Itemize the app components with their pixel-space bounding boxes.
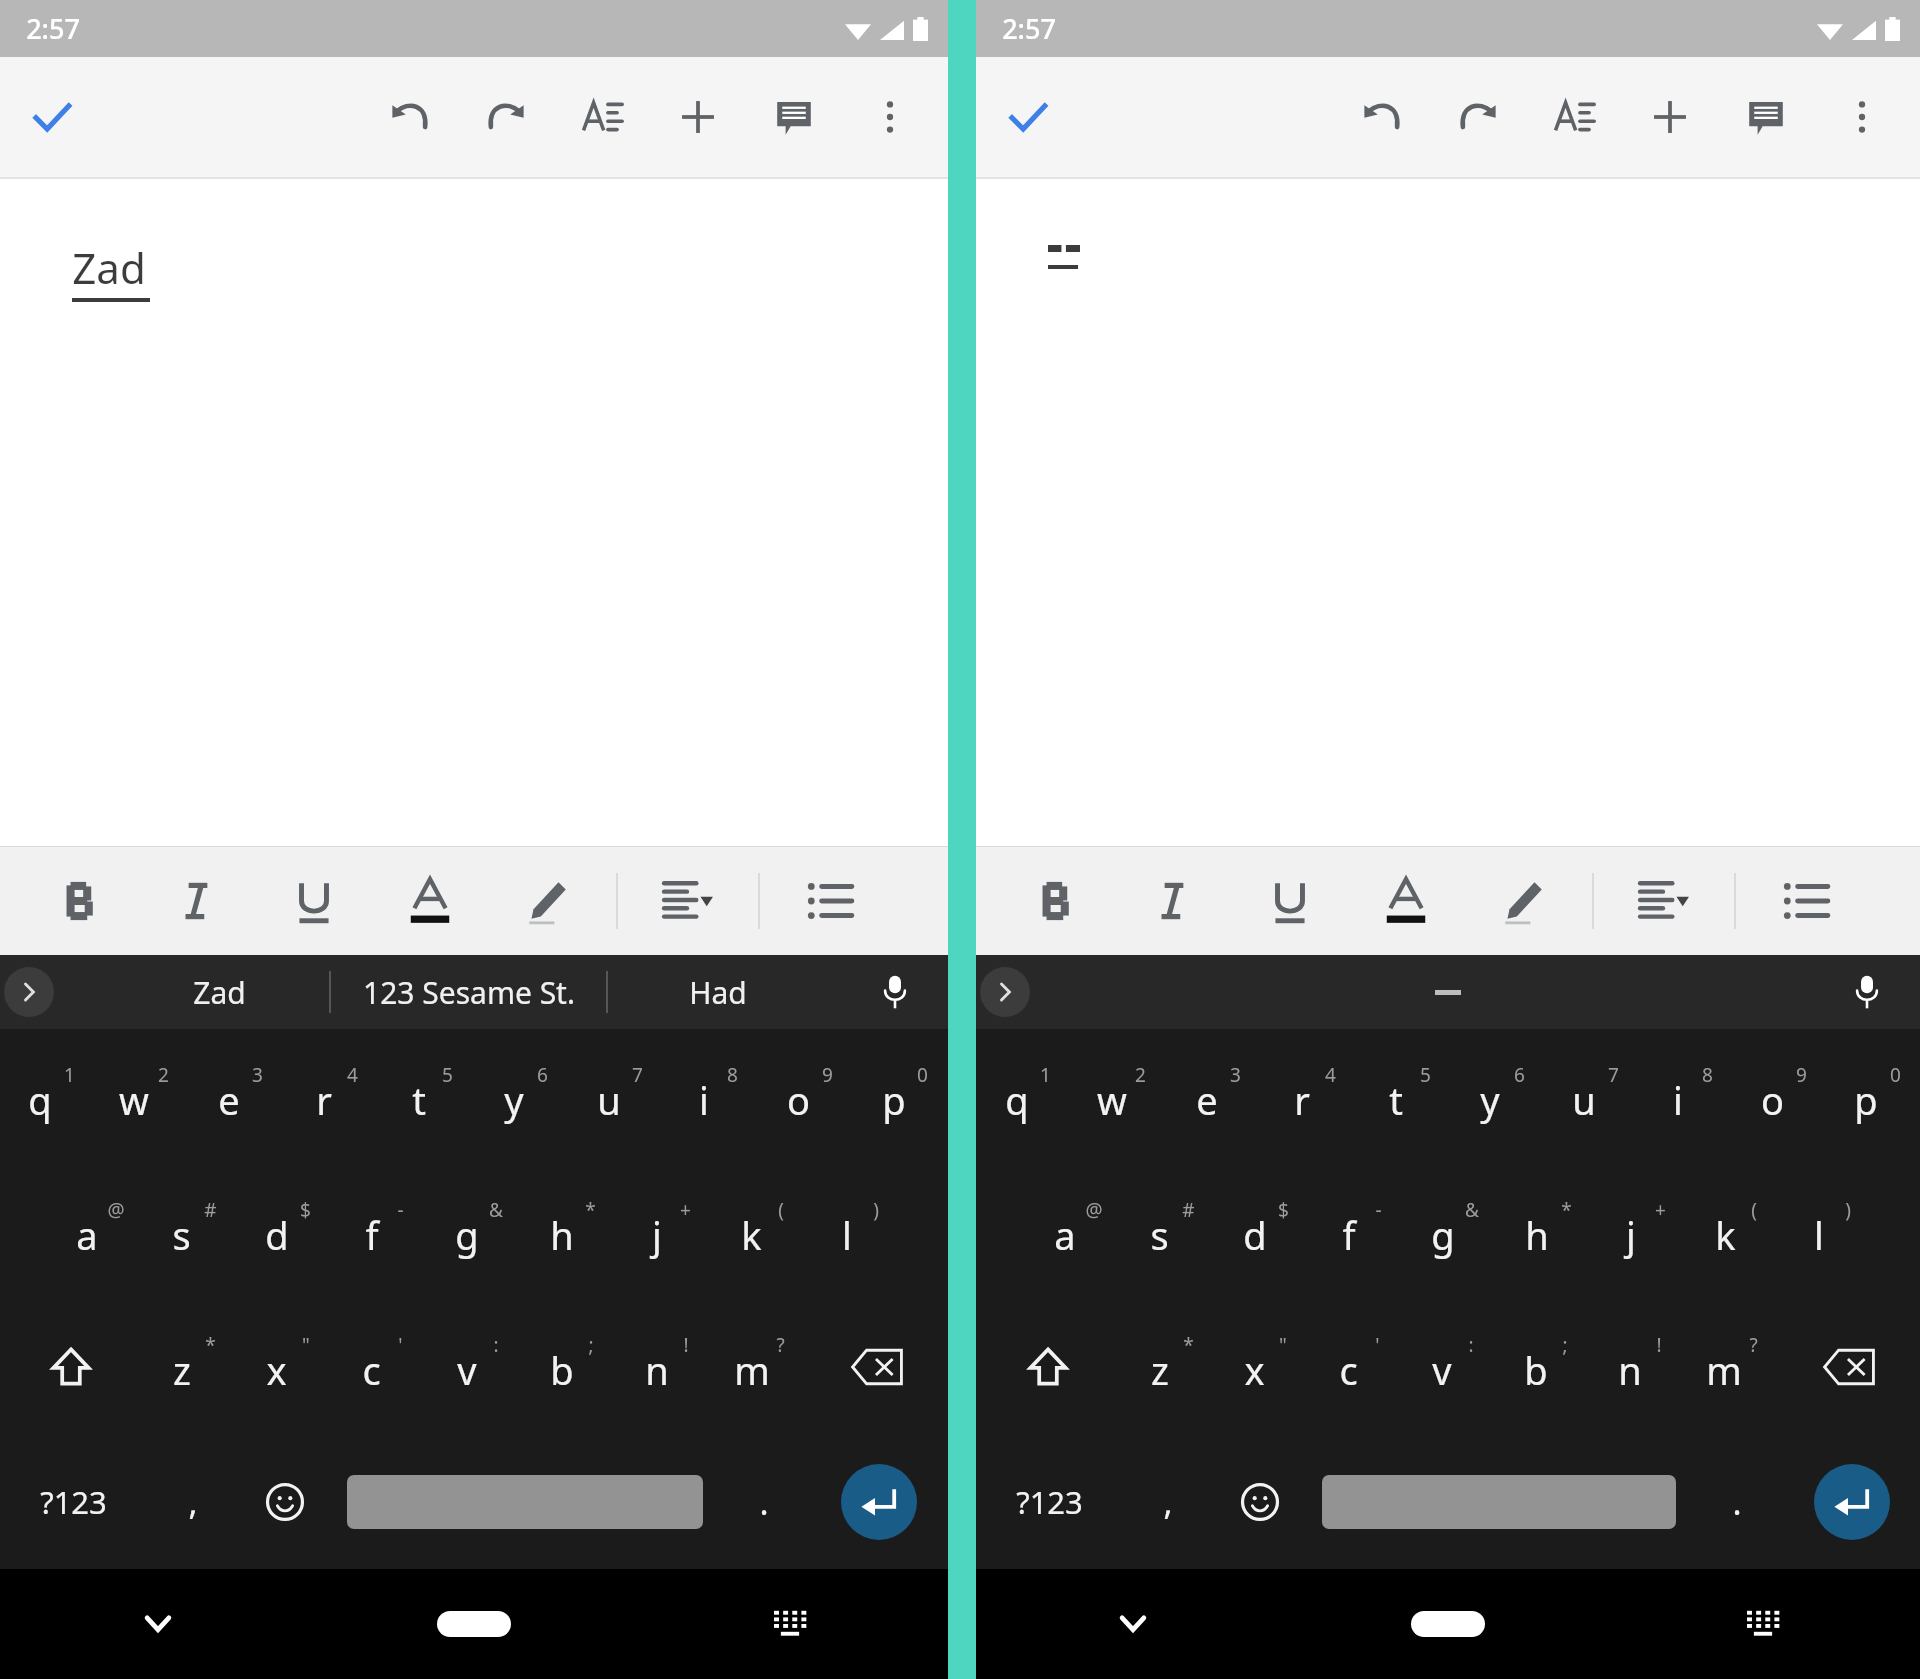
button[interactable]: k (1685, 1164, 1779, 1299)
button[interactable]: Zad (110, 955, 329, 1029)
button[interactable]: Underline (1254, 851, 1326, 951)
button[interactable]: Backspace (1778, 1299, 1920, 1434)
button[interactable]: Italic (1138, 851, 1210, 951)
button[interactable]: Emoji (239, 1434, 331, 1569)
button[interactable]: Text formatting (1526, 62, 1622, 172)
button[interactable]: . (1691, 1434, 1783, 1569)
button[interactable]: y (1450, 1029, 1544, 1164)
button[interactable]: y (473, 1029, 568, 1164)
button[interactable]: b (521, 1299, 616, 1434)
button[interactable]: z (141, 1299, 236, 1434)
button[interactable]: s (1119, 1164, 1214, 1299)
button[interactable]: Switch keyboard (632, 1569, 948, 1679)
button[interactable]: Highlight (1486, 851, 1558, 951)
button[interactable]: Comments (1718, 62, 1814, 172)
button[interactable]: Undo (1334, 62, 1430, 172)
button[interactable]: Alignment (652, 851, 724, 951)
button[interactable]: Insert (1622, 62, 1718, 172)
button[interactable]: j (616, 1164, 711, 1299)
button[interactable]: v (426, 1299, 521, 1434)
button[interactable]: a (1024, 1164, 1119, 1299)
button[interactable]: Emoji (1214, 1434, 1306, 1569)
button[interactable]: q (0, 1029, 94, 1164)
button[interactable]: d (236, 1164, 331, 1299)
button[interactable]: e (188, 1029, 283, 1164)
button[interactable]: Bold (46, 851, 118, 951)
button[interactable]: Undo (362, 62, 458, 172)
button[interactable]: Done (20, 85, 84, 149)
button[interactable]: g (1403, 1164, 1497, 1299)
button[interactable]: h (1497, 1164, 1591, 1299)
button[interactable]: g (426, 1164, 521, 1299)
button[interactable]: Text color (1370, 851, 1442, 951)
button[interactable]: c (1308, 1299, 1402, 1434)
button[interactable]: b (1496, 1299, 1590, 1434)
button[interactable]: , (147, 1434, 239, 1569)
button[interactable]: ?123 (976, 1434, 1122, 1569)
button[interactable]: f (1309, 1164, 1403, 1299)
button[interactable]: l (806, 1164, 901, 1299)
button[interactable]: , (1122, 1434, 1214, 1569)
button[interactable]: Shift (0, 1299, 141, 1434)
button[interactable]: Comments (746, 62, 842, 172)
button[interactable]: z (1119, 1299, 1214, 1434)
button[interactable]: i (1638, 1029, 1732, 1164)
button[interactable]: j (1591, 1164, 1685, 1299)
button[interactable]: t (378, 1029, 473, 1164)
button[interactable]: q (976, 1029, 1071, 1164)
button[interactable]: . (718, 1434, 810, 1569)
button[interactable]: p (1826, 1029, 1920, 1164)
button[interactable]: f (331, 1164, 426, 1299)
button[interactable]: x (236, 1299, 331, 1434)
button[interactable]: Hide keyboard (976, 1569, 1290, 1679)
button[interactable]: Expand toolbar (4, 967, 54, 1017)
button[interactable]: p (853, 1029, 948, 1164)
button[interactable]: Expand toolbar (980, 967, 1030, 1017)
button[interactable]: Redo (458, 62, 554, 172)
button[interactable]: Had (608, 955, 828, 1029)
button[interactable]: Underline (278, 851, 350, 951)
button[interactable]: r (1261, 1029, 1356, 1164)
button[interactable]: d (1214, 1164, 1309, 1299)
button[interactable]: Bulleted list (794, 851, 866, 951)
button[interactable]: r (283, 1029, 378, 1164)
button[interactable]: ?123 (0, 1434, 147, 1569)
button[interactable]: o (1732, 1029, 1826, 1164)
button[interactable]: Hide keyboard (0, 1569, 316, 1679)
button[interactable]: u (568, 1029, 663, 1164)
button[interactable]: i (663, 1029, 758, 1164)
button[interactable]: Voice input (868, 965, 922, 1019)
button[interactable]: Bulleted list (1770, 851, 1842, 951)
button[interactable]: t (1356, 1029, 1450, 1164)
button[interactable]: u (1544, 1029, 1638, 1164)
button[interactable]: Text formatting (554, 62, 650, 172)
button[interactable]: k (711, 1164, 806, 1299)
button[interactable]: c (331, 1299, 426, 1434)
button[interactable]: m (711, 1299, 806, 1434)
button[interactable]: 123 Sesame St. (331, 955, 606, 1029)
button[interactable]: h (521, 1164, 616, 1299)
button[interactable]: Done (996, 85, 1060, 149)
button[interactable]: x (1214, 1299, 1308, 1434)
button[interactable]: a (46, 1164, 141, 1299)
button[interactable]: l (1779, 1164, 1873, 1299)
button[interactable]: n (1590, 1299, 1684, 1434)
button[interactable]: s (141, 1164, 236, 1299)
button[interactable]: Enter (810, 1434, 948, 1569)
button[interactable]: Space (1306, 1434, 1691, 1569)
button[interactable]: n (616, 1299, 711, 1434)
button[interactable]: w (94, 1029, 188, 1164)
button[interactable]: Italic (162, 851, 234, 951)
button[interactable]: Text color (394, 851, 466, 951)
button[interactable]: Highlight (510, 851, 582, 951)
button[interactable]: w (1071, 1029, 1166, 1164)
button[interactable]: Enter (1783, 1434, 1920, 1569)
button[interactable]: Alignment (1628, 851, 1700, 951)
button[interactable]: Voice input (1840, 965, 1894, 1019)
button[interactable]: Backspace (806, 1299, 948, 1434)
button[interactable]: Redo (1430, 62, 1526, 172)
button[interactable]: More options (1814, 62, 1910, 172)
button[interactable]: Home (1290, 1569, 1605, 1679)
button[interactable]: o (758, 1029, 853, 1164)
button[interactable]: Bold (1022, 851, 1094, 951)
